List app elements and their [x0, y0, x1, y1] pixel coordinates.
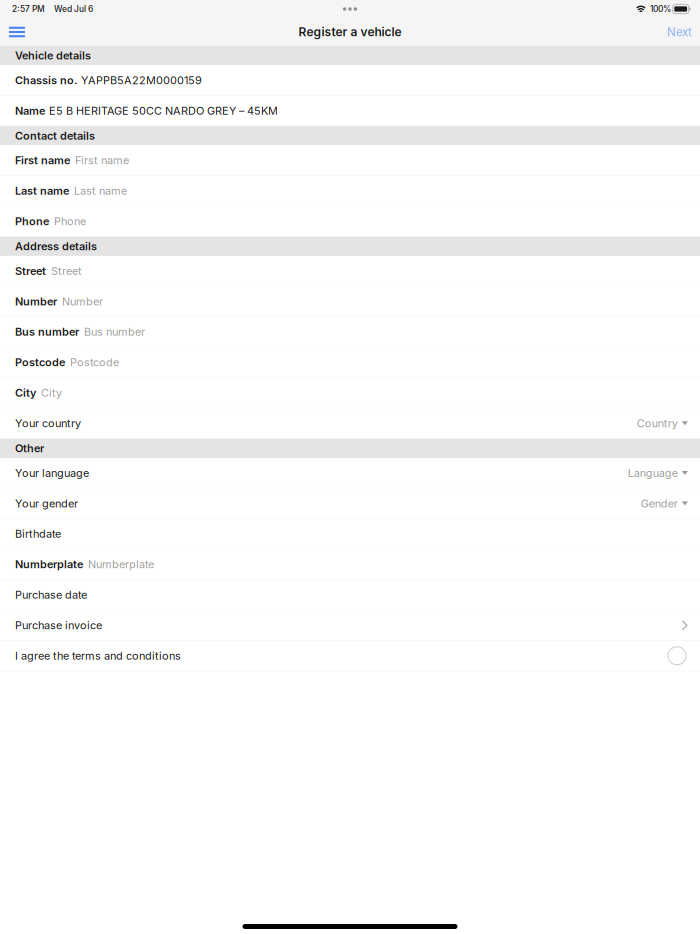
- staticText: E5 B HERITAGE 50CC NARDO GREY – 45KM: [49, 104, 278, 117]
- button[interactable]: Birthdate: [0, 519, 700, 549]
- button[interactable]: First name: [0, 145, 700, 176]
- button[interactable]: Purchase date: [0, 580, 700, 610]
- staticText: Register a vehicle: [298, 25, 401, 39]
- staticText: Other: [15, 442, 44, 455]
- button[interactable]: Number: [0, 286, 700, 317]
- staticText: YAPPB5A22M0000159: [81, 74, 202, 87]
- staticText: Chassis no.: [15, 74, 77, 87]
- button[interactable]: Numberplate: [0, 549, 700, 580]
- button[interactable]: Your language: [0, 458, 700, 488]
- button[interactable]: Menu: [4, 18, 30, 46]
- staticText: First name: [15, 154, 70, 167]
- staticText: Address details: [15, 240, 97, 253]
- staticText: Last name: [74, 184, 127, 197]
- staticText: Number: [15, 295, 57, 308]
- button[interactable]: City: [0, 378, 700, 408]
- staticText: Your gender: [15, 497, 78, 510]
- button[interactable]: Phone: [0, 206, 700, 237]
- staticText: Phone: [54, 215, 86, 228]
- button[interactable]: Purchase invoice: [0, 610, 700, 641]
- staticText: Phone: [15, 215, 49, 228]
- staticText: 2:57 PM: [12, 4, 45, 14]
- staticText: Purchase invoice: [15, 619, 102, 632]
- staticText: Postcode: [70, 356, 119, 369]
- staticText: Wed Jul 6: [54, 4, 93, 14]
- button[interactable]: Your gender: [0, 488, 700, 519]
- staticText: Bus number: [84, 325, 145, 338]
- staticText: Postcode: [15, 356, 65, 369]
- staticText: Vehicle details: [15, 49, 91, 62]
- staticText: Bus number: [15, 325, 79, 338]
- staticText: I agree the terms and conditions: [15, 649, 181, 662]
- button[interactable]: Last name: [0, 176, 700, 206]
- button[interactable]: I agree the terms and conditions: [0, 641, 700, 671]
- button[interactable]: Postcode: [0, 347, 700, 378]
- staticText: Gender: [641, 497, 678, 510]
- staticText: First name: [75, 154, 129, 167]
- staticText: Your language: [15, 466, 89, 479]
- staticText: Next: [667, 25, 692, 39]
- staticText: Number: [62, 295, 103, 308]
- staticText: Last name: [15, 184, 69, 197]
- staticText: Numberplate: [15, 558, 83, 571]
- button[interactable]: Your country: [0, 408, 700, 439]
- staticText: Street: [51, 264, 82, 277]
- staticText: City: [15, 386, 36, 399]
- button[interactable]: Street: [0, 256, 700, 286]
- staticText: Street: [15, 264, 46, 277]
- staticText: Contact details: [15, 129, 95, 142]
- button[interactable]: Next: [661, 18, 698, 46]
- staticText: Language: [628, 466, 678, 479]
- staticText: Numberplate: [88, 558, 154, 571]
- staticText: Birthdate: [15, 527, 61, 540]
- staticText: Name: [15, 104, 45, 117]
- staticText: Purchase date: [15, 588, 87, 601]
- staticText: 100%: [650, 4, 671, 14]
- button[interactable]: Bus number: [0, 317, 700, 347]
- staticText: City: [41, 386, 62, 399]
- staticText: Your country: [15, 417, 81, 430]
- staticText: Country: [637, 417, 678, 430]
